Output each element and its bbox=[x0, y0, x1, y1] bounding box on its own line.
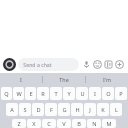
staticText: F bbox=[50, 106, 53, 114]
button[interactable]: I bbox=[89, 87, 101, 100]
staticText: O bbox=[106, 90, 111, 98]
button[interactable]: T bbox=[50, 87, 62, 100]
staticText: S bbox=[23, 106, 27, 114]
button[interactable]: Stickers bbox=[103, 59, 114, 70]
button[interactable]: M bbox=[102, 119, 116, 128]
staticText: U bbox=[80, 90, 85, 98]
staticText: B bbox=[77, 120, 81, 128]
button[interactable]: Send a chat bbox=[18, 58, 79, 71]
button[interactable]: C bbox=[42, 119, 56, 128]
staticText: H bbox=[75, 106, 80, 114]
button[interactable]: E bbox=[25, 87, 36, 100]
staticText: T bbox=[54, 90, 58, 98]
button[interactable]: R bbox=[37, 87, 49, 100]
staticText: V bbox=[62, 120, 66, 128]
button[interactable]: Z bbox=[12, 119, 26, 128]
staticText: I'm bbox=[103, 76, 111, 83]
button[interactable]: I bbox=[0, 73, 42, 86]
button[interactable]: L bbox=[110, 103, 122, 116]
button[interactable]: K bbox=[97, 103, 109, 116]
button[interactable]: V bbox=[57, 119, 71, 128]
staticText: I bbox=[94, 90, 96, 98]
staticText: G bbox=[62, 106, 67, 114]
staticText: I bbox=[20, 76, 22, 83]
staticText: J bbox=[89, 106, 91, 114]
button[interactable]: A bbox=[6, 103, 18, 116]
staticText: R bbox=[41, 90, 45, 98]
staticText: Y bbox=[67, 90, 71, 98]
button[interactable]: Emoji bbox=[92, 59, 103, 70]
staticText: E bbox=[29, 90, 33, 98]
staticText: A bbox=[10, 106, 14, 114]
button[interactable]: X bbox=[27, 119, 41, 128]
button[interactable]: B bbox=[72, 119, 86, 128]
button[interactable]: O bbox=[102, 87, 114, 100]
button[interactable]: H bbox=[71, 103, 83, 116]
button[interactable]: G bbox=[58, 103, 70, 116]
staticText: Q bbox=[4, 90, 9, 98]
staticText: L bbox=[115, 106, 118, 114]
button[interactable]: Voice message bbox=[81, 59, 92, 70]
button[interactable]: N bbox=[87, 119, 101, 128]
button[interactable]: Camera bbox=[3, 58, 16, 71]
staticText: The bbox=[59, 76, 69, 83]
staticText: Send a chat bbox=[23, 61, 52, 68]
button[interactable]: F bbox=[45, 103, 57, 116]
staticText: D bbox=[36, 106, 41, 114]
button[interactable]: U bbox=[76, 87, 88, 100]
button[interactable]: P bbox=[115, 87, 127, 100]
staticText: P bbox=[119, 90, 123, 98]
staticText: K bbox=[101, 106, 105, 114]
button[interactable]: D bbox=[32, 103, 44, 116]
button[interactable]: I'm bbox=[86, 73, 128, 86]
button[interactable]: S bbox=[19, 103, 31, 116]
button[interactable]: J bbox=[84, 103, 96, 116]
button[interactable]: Y bbox=[63, 87, 75, 100]
button[interactable]: Q bbox=[1, 87, 12, 100]
staticText: M bbox=[106, 120, 112, 128]
button[interactable]: W bbox=[13, 87, 24, 100]
staticText: C bbox=[47, 120, 51, 128]
staticText: N bbox=[92, 120, 97, 128]
staticText: Z bbox=[17, 120, 21, 128]
button[interactable]: More options bbox=[114, 59, 125, 70]
staticText: W bbox=[16, 90, 22, 98]
staticText: X bbox=[32, 120, 36, 128]
button[interactable]: The bbox=[43, 73, 85, 86]
